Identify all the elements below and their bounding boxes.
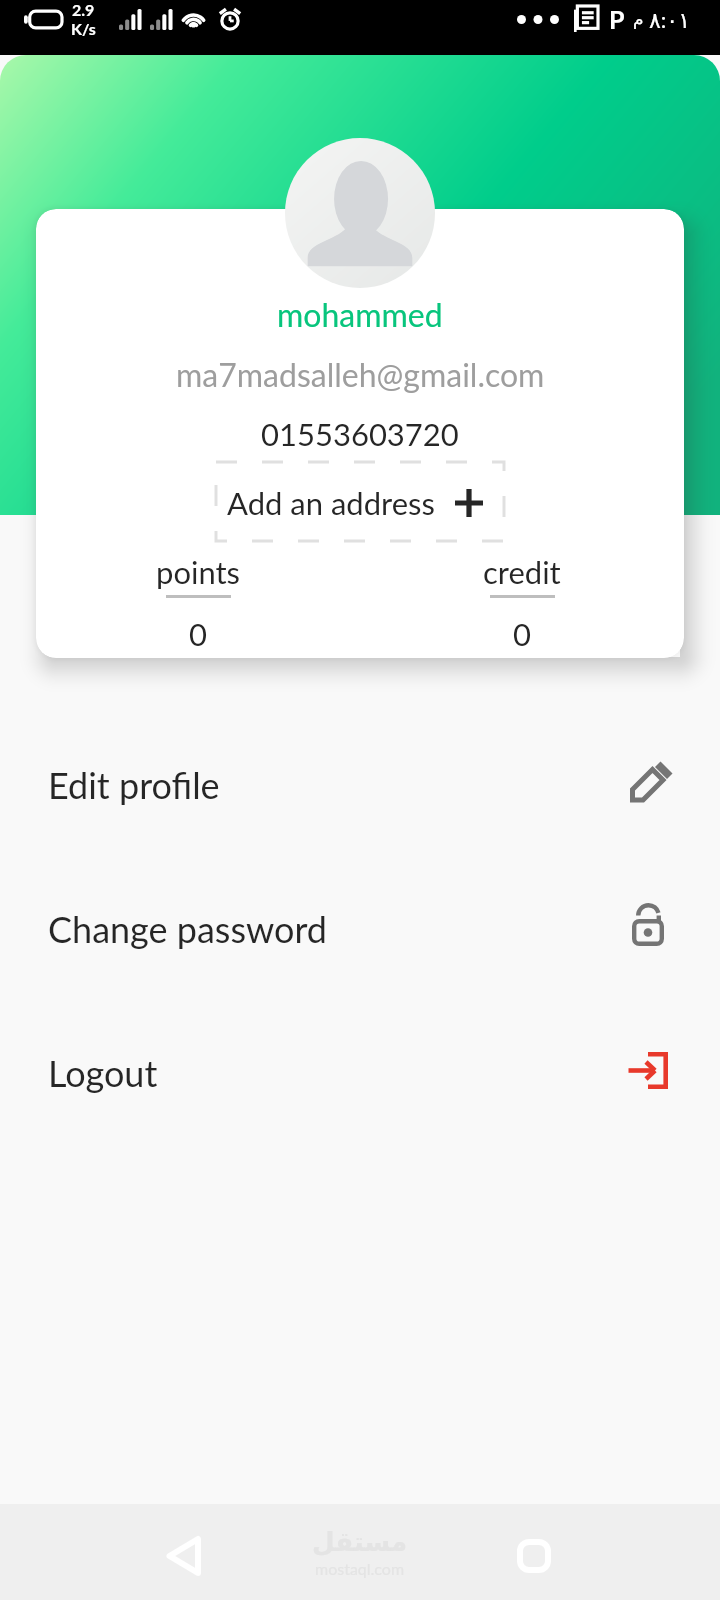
button[interactable]: Logout bbox=[0, 1000, 720, 1144]
other: Edit profile bbox=[628, 760, 676, 808]
staticText: 01553603720 bbox=[261, 415, 459, 452]
staticText: 2.9 bbox=[72, 0, 95, 19]
staticText: ٨:٠١ bbox=[649, 6, 690, 33]
button[interactable]: Home bbox=[498, 1520, 570, 1592]
staticText: ma7madsalleh@gmail.com bbox=[176, 355, 545, 393]
staticText: م bbox=[633, 9, 644, 29]
staticText: mohammed bbox=[277, 295, 443, 333]
staticText: points bbox=[156, 553, 241, 590]
staticText: P bbox=[609, 4, 625, 34]
staticText: Logout bbox=[48, 1051, 158, 1094]
staticText: 0 bbox=[189, 615, 207, 652]
other: Logout bbox=[628, 1048, 676, 1096]
staticText: مستقل bbox=[312, 1527, 408, 1557]
button[interactable]: Back bbox=[150, 1520, 222, 1592]
staticText: 0 bbox=[513, 615, 531, 652]
staticText: Add an address bbox=[227, 484, 435, 521]
staticText: K/s bbox=[71, 19, 96, 38]
button[interactable]: Add an address bbox=[216, 462, 504, 541]
staticText: Edit profile bbox=[48, 763, 220, 806]
button[interactable]: Change password bbox=[0, 856, 720, 1000]
button[interactable]: Edit profile bbox=[0, 712, 720, 856]
staticText: mostaql.com bbox=[315, 1559, 405, 1578]
other: Change password bbox=[628, 904, 676, 952]
staticText: credit bbox=[483, 553, 561, 590]
staticText: Change password bbox=[48, 907, 328, 950]
